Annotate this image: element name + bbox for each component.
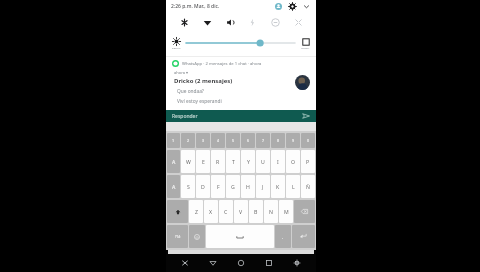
staticText: Responder xyxy=(172,113,198,120)
staticText: Viví estoy esperandi xyxy=(177,98,222,105)
button[interactable]: N xyxy=(264,200,278,223)
staticText: BRILLO xyxy=(172,46,181,49)
button[interactable]: O xyxy=(286,150,300,173)
button[interactable]: Recents xyxy=(260,254,278,272)
button[interactable]: Y xyxy=(241,150,255,173)
staticText: 5 xyxy=(232,138,235,143)
button[interactable]: V xyxy=(234,200,248,223)
staticText: E xyxy=(202,158,205,165)
staticText: 6 xyxy=(247,138,250,143)
button[interactable]: Backspace xyxy=(294,200,315,223)
button[interactable]: Shift xyxy=(167,200,188,223)
button[interactable]: Auto brightness xyxy=(301,38,310,49)
button[interactable]: H xyxy=(241,175,255,198)
staticText: A xyxy=(172,158,176,165)
button[interactable]: D xyxy=(196,175,210,198)
staticText: T xyxy=(232,158,235,165)
staticText: B xyxy=(254,208,258,215)
button[interactable]: Home xyxy=(232,254,250,272)
staticText: J xyxy=(262,183,264,190)
button[interactable]: J xyxy=(256,175,270,198)
button[interactable]: 2 xyxy=(181,133,195,148)
staticText: O xyxy=(291,158,296,165)
staticText: Dricko (2 mensajes) xyxy=(174,77,233,85)
button[interactable]: Contact photo xyxy=(295,75,310,90)
staticText: W xyxy=(186,158,191,165)
staticText: Que ondaa? xyxy=(177,88,204,95)
button[interactable]: Auto rotate xyxy=(175,13,193,31)
button[interactable]: 8 xyxy=(271,133,285,148)
button[interactable]: Emoji xyxy=(189,225,205,248)
button[interactable]: WhatsApp · 2 mensajes de 1 chat · ahora xyxy=(166,57,316,110)
button[interactable]: Enter xyxy=(292,225,315,248)
button[interactable]: L xyxy=(286,175,300,198)
button[interactable]: A xyxy=(167,175,180,198)
staticText: 4 xyxy=(217,138,220,143)
button[interactable]: C xyxy=(219,200,233,223)
button[interactable]: R xyxy=(211,150,225,173)
staticText: 3 xyxy=(202,138,205,143)
staticText: 2:26 p.m. Mar., 8 dic. xyxy=(171,3,220,10)
button[interactable]: Sound xyxy=(221,13,239,31)
button[interactable]: 3 xyxy=(196,133,210,148)
button[interactable]: F xyxy=(211,175,225,198)
staticText: ?1# xyxy=(175,235,181,239)
button[interactable]: 9 xyxy=(286,133,300,148)
button[interactable]: Ñ xyxy=(301,175,315,198)
staticText: I xyxy=(277,158,279,165)
button[interactable]: 7 xyxy=(256,133,270,148)
staticText: V xyxy=(239,208,243,215)
button[interactable]: Settings xyxy=(287,1,297,11)
button[interactable]: W xyxy=(181,150,195,173)
staticText: R xyxy=(216,158,220,165)
button[interactable]: K xyxy=(271,175,285,198)
button[interactable]: Screenshot xyxy=(176,254,194,272)
button[interactable]: Responder xyxy=(172,110,310,122)
button[interactable]: T xyxy=(226,150,240,173)
button[interactable]: Expand xyxy=(301,1,311,11)
button[interactable]: Cast xyxy=(289,13,307,31)
button[interactable]: 4 xyxy=(211,133,225,148)
button[interactable]: P xyxy=(301,150,315,173)
staticText: F xyxy=(217,183,220,190)
button[interactable]: U xyxy=(256,150,270,173)
staticText: L xyxy=(292,183,295,190)
button[interactable]: Do not disturb xyxy=(266,13,284,31)
button[interactable]: Space xyxy=(206,225,274,248)
button[interactable]: 6 xyxy=(241,133,255,148)
button[interactable]: X xyxy=(204,200,218,223)
staticText: Z xyxy=(195,208,198,215)
button[interactable]: 5 xyxy=(226,133,240,148)
button[interactable]: E xyxy=(196,150,210,173)
button[interactable]: A xyxy=(167,150,180,173)
button[interactable]: B xyxy=(249,200,263,223)
staticText: X xyxy=(209,208,213,215)
button[interactable]: Symbols xyxy=(167,225,188,248)
staticText: ahora ▾ xyxy=(174,70,188,75)
staticText: N xyxy=(269,208,273,215)
staticText: U xyxy=(261,158,265,165)
button[interactable]: Flashlight xyxy=(243,13,261,31)
button[interactable]: Back xyxy=(204,254,222,272)
button[interactable]: User xyxy=(273,1,283,11)
button[interactable]: S xyxy=(181,175,195,198)
staticText: 7 xyxy=(262,138,265,143)
button[interactable]: M xyxy=(279,200,293,223)
button[interactable]: Move xyxy=(288,254,306,272)
button[interactable]: G xyxy=(226,175,240,198)
button[interactable]: Z xyxy=(189,200,203,223)
other: Send xyxy=(302,112,310,120)
staticText: 2 xyxy=(187,138,190,143)
button[interactable]: 1 xyxy=(167,133,180,148)
staticText: K xyxy=(276,183,280,190)
staticText: Autom. xyxy=(301,46,310,49)
staticText: S xyxy=(187,183,190,190)
staticText: D xyxy=(201,183,205,190)
staticText: C xyxy=(224,208,228,215)
staticText: G xyxy=(231,183,235,190)
button[interactable]: Wi-Fi xyxy=(198,13,216,31)
button[interactable]: 0 xyxy=(301,133,315,148)
button[interactable]: I xyxy=(271,150,285,173)
staticText: 9 xyxy=(292,138,295,143)
